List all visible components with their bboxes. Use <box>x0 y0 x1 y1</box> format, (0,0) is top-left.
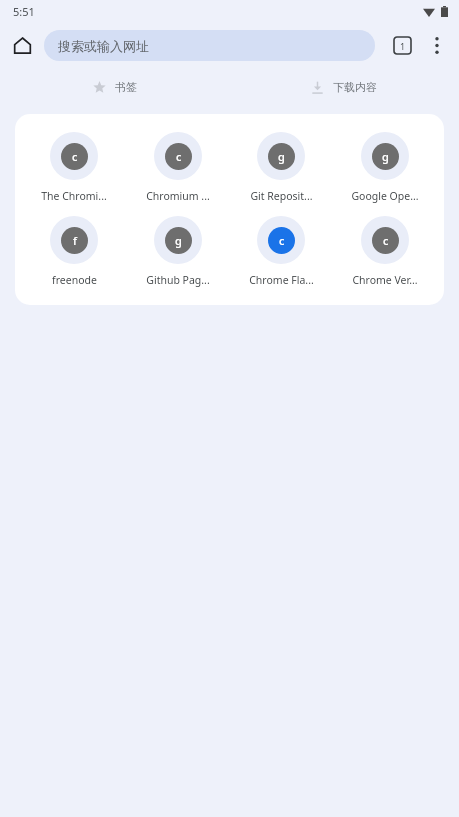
staticText: 书签 <box>115 80 137 94</box>
button[interactable]: 下载内容 <box>311 80 377 94</box>
staticText: Chrome Ver... <box>352 273 418 287</box>
staticText: Chromium ... <box>146 189 210 203</box>
staticText: f <box>73 233 77 248</box>
button[interactable]: g <box>237 130 325 205</box>
button[interactable]: c <box>30 130 118 205</box>
staticText: c <box>72 149 78 164</box>
staticText: 下载内容 <box>333 80 377 94</box>
staticText: Github Pag... <box>146 273 210 287</box>
staticText: freenode <box>52 273 97 287</box>
button[interactable]: g <box>341 130 429 205</box>
button[interactable]: Home <box>6 29 38 61</box>
staticText: g <box>175 233 182 248</box>
button[interactable]: More options <box>419 27 455 63</box>
button[interactable]: g <box>134 214 222 289</box>
button[interactable]: f <box>30 214 118 289</box>
staticText: c <box>383 233 389 248</box>
button[interactable]: c <box>341 214 429 289</box>
button[interactable]: 搜索或输入网址 <box>44 30 375 61</box>
staticText: 5:51 <box>13 4 35 19</box>
staticText: g <box>382 149 389 164</box>
staticText: Git Reposit... <box>250 189 313 203</box>
button[interactable]: c <box>134 130 222 205</box>
button[interactable]: 书签 <box>93 80 137 94</box>
staticText: g <box>278 149 285 164</box>
staticText: The Chromi... <box>41 189 107 203</box>
staticText: 1 <box>400 40 406 52</box>
button[interactable]: c <box>237 214 325 289</box>
button[interactable]: Tabs: 1 <box>385 28 419 62</box>
staticText: Google Ope... <box>351 189 419 203</box>
staticText: Chrome Fla... <box>249 273 314 287</box>
staticText: 搜索或输入网址 <box>58 38 149 54</box>
staticText: c <box>279 233 285 248</box>
staticText: c <box>176 149 182 164</box>
